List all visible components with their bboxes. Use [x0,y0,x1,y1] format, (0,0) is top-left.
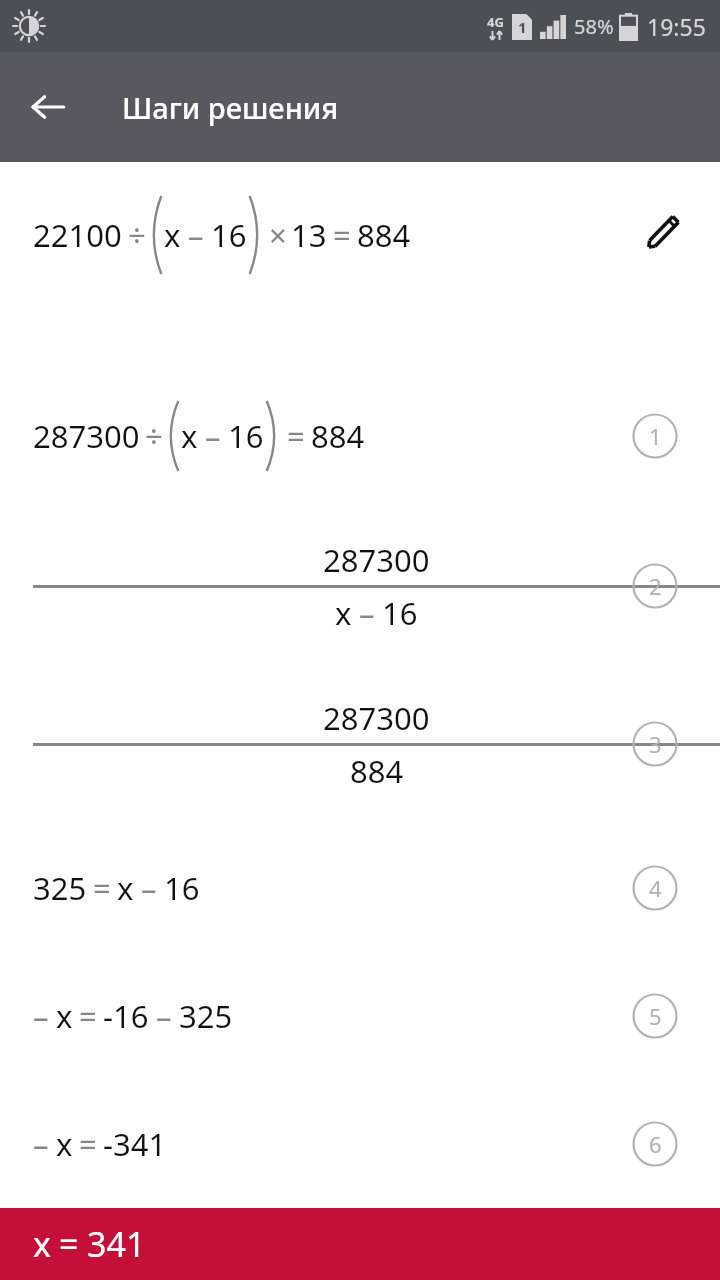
button[interactable]: Edit [636,203,692,259]
staticText: – [359,592,375,634]
staticText: 19:55 [647,11,706,42]
staticText: = [287,415,305,457]
staticText: 341 [87,1221,146,1267]
button[interactable]: 287300 [0,364,720,507]
staticText: 2 [649,571,662,601]
staticText: 6 [649,1129,662,1159]
staticText: 4G [487,13,504,31]
staticText: 16 [382,592,418,634]
staticText: 325 [179,995,233,1037]
staticText: 16 [164,867,200,909]
staticText: x [33,1221,51,1267]
staticText: 884 [357,214,411,256]
staticText: × [269,214,287,256]
staticText: x [335,592,352,634]
staticText: – [205,415,221,457]
button[interactable]: 287300 [0,665,720,823]
staticText: 884 [350,750,404,792]
staticText: = [79,995,97,1037]
staticText: 1 [518,17,527,37]
staticText: 4 [649,873,662,903]
staticText: 287300 [323,697,430,739]
staticText: 3 [649,729,662,759]
staticText: 287300 [33,415,140,457]
staticText: 287300 [323,539,430,581]
staticText: x [164,214,181,256]
staticText: – [33,995,49,1037]
staticText: 884 [311,415,365,457]
staticText: = [333,214,351,256]
staticText: 22100 [33,214,122,256]
staticText: x [117,867,134,909]
staticText: – [141,867,157,909]
staticText: x [181,415,198,457]
button[interactable]: 287300 [0,507,720,665]
staticText: – [156,995,172,1037]
button[interactable]: 4 [632,865,678,911]
button[interactable]: 22100 [0,162,720,308]
button[interactable]: Back [20,79,76,135]
staticText: 58% [574,13,614,40]
staticText: -341 [103,1123,167,1165]
staticText: ÷ [128,214,146,256]
staticText: x [56,1123,73,1165]
staticText: 16 [228,415,264,457]
staticText: -16 [103,995,149,1037]
staticText: – [33,1123,49,1165]
staticText: ÷ [145,415,163,457]
button[interactable]: 3 [632,721,678,767]
staticText: 16 [211,214,247,256]
button[interactable]: 5 [632,993,678,1039]
staticText: – [188,214,204,256]
staticText: 13 [291,214,327,256]
button[interactable]: 6 [632,1121,678,1167]
button[interactable]: – [0,1080,720,1208]
button[interactable]: 2 [632,563,678,609]
staticText: x [56,995,73,1037]
staticText: = [59,1221,79,1267]
staticText: 5 [649,1001,662,1031]
staticText: Шаги решения [122,88,339,127]
button[interactable]: x [0,1208,720,1280]
button[interactable]: 1 [632,413,678,459]
staticText: = [93,867,111,909]
button[interactable]: 325 [0,823,720,952]
staticText: 325 [33,867,87,909]
staticText: = [79,1123,97,1165]
staticText: 1 [649,421,662,451]
button[interactable]: – [0,952,720,1080]
